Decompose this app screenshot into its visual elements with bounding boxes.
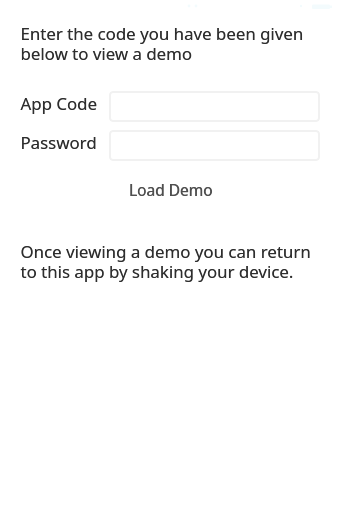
button[interactable]: App Code input field xyxy=(109,91,320,122)
staticText: Once viewing a demo you can return to th… xyxy=(21,240,321,283)
button[interactable]: Password input field xyxy=(109,130,320,161)
staticText: Password xyxy=(21,131,113,154)
staticText: App Code xyxy=(21,92,113,115)
staticText: Load Demo xyxy=(129,179,213,200)
staticText: Enter the code you have been given below… xyxy=(21,22,321,65)
button[interactable]: Load Demo xyxy=(118,174,223,204)
